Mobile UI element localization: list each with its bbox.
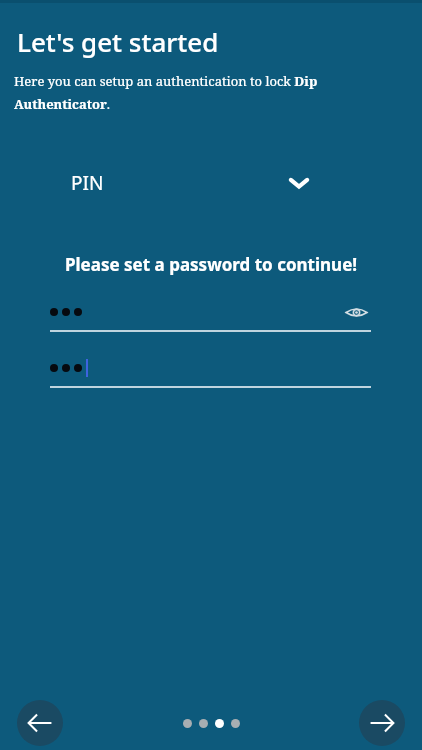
staticText: Let's get started — [17, 24, 219, 59]
button[interactable]: Next — [359, 700, 405, 746]
button[interactable]: Show password — [341, 297, 371, 327]
staticText: Please set a password to continue! — [65, 253, 358, 276]
button[interactable]: PIN — [0, 161, 422, 205]
button[interactable]: Back — [17, 700, 63, 746]
staticText: Here you can setup an authentication to … — [14, 72, 327, 113]
staticText: PIN — [71, 170, 104, 196]
